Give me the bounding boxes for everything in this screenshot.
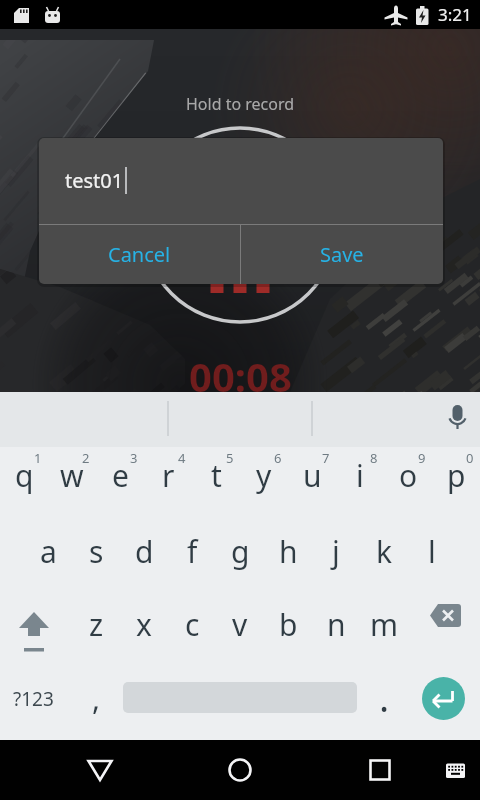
staticText: l	[428, 531, 436, 572]
staticText: x	[136, 604, 152, 645]
button[interactable]: b	[264, 592, 312, 665]
staticText: .	[379, 671, 390, 723]
staticText: Save	[320, 241, 364, 268]
button[interactable]	[76, 746, 124, 794]
staticText: 8	[370, 449, 378, 467]
staticText: ?123	[13, 686, 54, 712]
staticText: 7	[322, 449, 330, 467]
button[interactable]: m	[360, 592, 408, 665]
staticText: i	[356, 455, 364, 496]
staticText: 0	[466, 449, 474, 467]
staticText: y	[256, 455, 272, 496]
button[interactable]: ,	[72, 665, 120, 740]
button[interactable]: h	[264, 520, 312, 593]
button[interactable]: d	[120, 520, 168, 593]
staticText: t	[211, 455, 222, 496]
button[interactable]	[422, 677, 465, 720]
button[interactable]	[431, 746, 479, 794]
staticText: test01	[65, 167, 124, 194]
staticText: u	[303, 455, 322, 496]
button[interactable]: Cancel	[39, 225, 240, 284]
button[interactable]: z	[72, 592, 120, 665]
button[interactable]	[356, 746, 404, 794]
staticText: 4	[178, 449, 186, 467]
staticText: c	[185, 604, 200, 645]
button[interactable]: ?123	[0, 665, 72, 740]
staticText: b	[279, 604, 298, 645]
button[interactable]: r	[144, 447, 192, 520]
staticText: d	[135, 531, 154, 572]
staticText: e	[112, 455, 129, 496]
button[interactable]: f	[168, 520, 216, 593]
button[interactable]	[0, 592, 72, 665]
staticText: 1	[34, 449, 42, 467]
staticText: 3:21	[438, 3, 472, 26]
button[interactable]: e	[96, 447, 144, 520]
button[interactable]: x	[120, 592, 168, 665]
button[interactable]	[408, 592, 480, 665]
button[interactable]	[436, 392, 480, 447]
button[interactable]: a	[24, 520, 72, 593]
staticText: ,	[92, 678, 101, 719]
staticText: Cancel	[108, 241, 171, 268]
button[interactable]: i	[336, 447, 384, 520]
staticText: f	[187, 531, 198, 572]
button[interactable]: y	[240, 447, 288, 520]
button[interactable]: j	[312, 520, 360, 593]
button[interactable]: u	[288, 447, 336, 520]
staticText: 6	[274, 449, 282, 467]
staticText: a	[40, 531, 57, 572]
staticText: j	[332, 531, 340, 572]
button[interactable]: k	[360, 520, 408, 593]
staticText: v	[232, 604, 248, 645]
staticText: w	[60, 455, 84, 496]
button[interactable]: p	[432, 447, 480, 520]
staticText: q	[15, 455, 34, 496]
staticText: 3	[130, 449, 138, 467]
staticText: r	[162, 455, 175, 496]
button[interactable]: c	[168, 592, 216, 665]
staticText: n	[327, 604, 346, 645]
staticText: s	[89, 531, 104, 572]
staticText: 9	[418, 449, 426, 467]
button[interactable]: g	[216, 520, 264, 593]
staticText: z	[89, 604, 104, 645]
staticText: 00:08	[189, 349, 292, 392]
button[interactable]: Save	[241, 225, 443, 284]
button[interactable]: o	[384, 447, 432, 520]
staticText: p	[447, 455, 466, 496]
staticText: 5	[226, 449, 234, 467]
button[interactable]: v	[216, 592, 264, 665]
button[interactable]: q	[0, 447, 48, 520]
button[interactable]	[216, 746, 264, 794]
staticText: h	[279, 531, 298, 572]
staticText: Hold to record	[186, 93, 295, 115]
staticText: k	[376, 531, 393, 572]
button[interactable]: s	[72, 520, 120, 593]
staticText: g	[231, 531, 250, 572]
button[interactable]: t	[192, 447, 240, 520]
button[interactable]: w	[48, 447, 96, 520]
button[interactable]: .	[360, 665, 408, 740]
staticText: o	[399, 455, 418, 496]
button[interactable]: l	[408, 520, 456, 593]
staticText: m	[370, 604, 399, 645]
staticText: 2	[82, 449, 90, 467]
button[interactable]: n	[312, 592, 360, 665]
